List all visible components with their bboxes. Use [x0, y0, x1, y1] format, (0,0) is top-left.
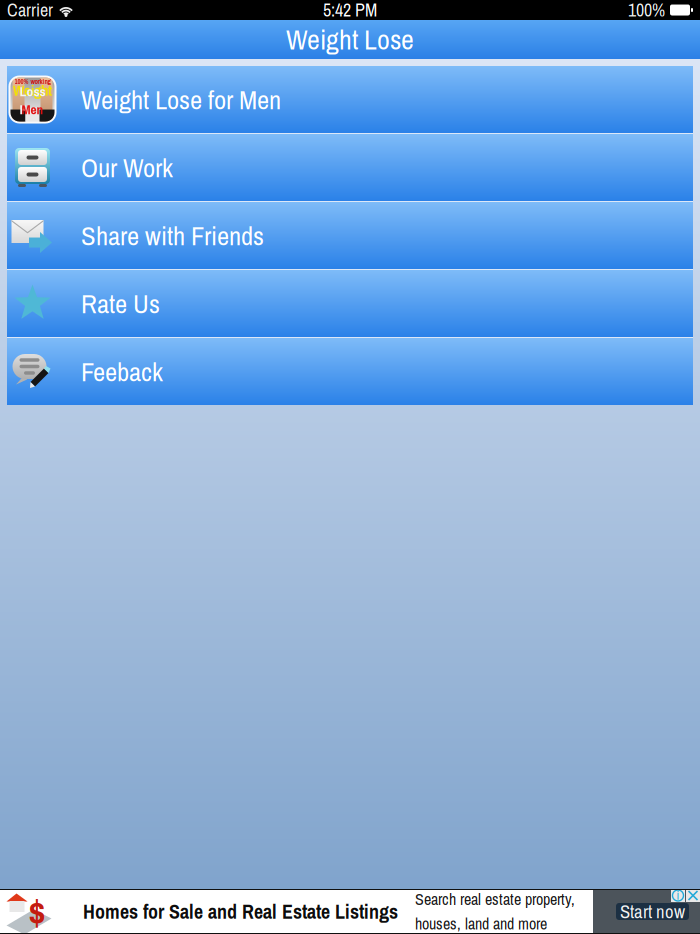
button[interactable]: Feeback [7, 338, 693, 405]
staticText: Start now [620, 899, 685, 924]
staticText: Feeback [81, 353, 163, 389]
staticText: Men [21, 100, 43, 118]
staticText: 100% working [14, 77, 50, 86]
staticText: Loss For [19, 82, 45, 118]
button[interactable]: Our Work [7, 134, 693, 201]
button[interactable]: Share with Friends [7, 202, 693, 269]
staticText: Search real estate property, [415, 888, 575, 910]
staticText: Weight Lose for Men [81, 81, 281, 117]
staticText: Share with Friends [81, 217, 264, 253]
staticText: Rate Us [81, 285, 160, 321]
button[interactable]: Rate Us [7, 270, 693, 337]
staticText: Carrier [7, 0, 53, 22]
button[interactable]: 100% working [7, 66, 693, 133]
staticText: Our Work [81, 149, 173, 185]
button[interactable]: Ad: Homes for Sale and Real Estate Listi… [0, 889, 700, 934]
staticText: Homes for Sale and Real Estate Listings [83, 898, 398, 925]
staticText: houses, land and more [415, 913, 547, 934]
staticText: Weight [13, 81, 52, 100]
staticText: 100% [628, 0, 665, 22]
staticText: i [676, 887, 679, 904]
staticText: $ [28, 887, 45, 934]
staticText: 5:42 PM [323, 0, 377, 22]
staticText: Weight Lose [286, 21, 414, 58]
